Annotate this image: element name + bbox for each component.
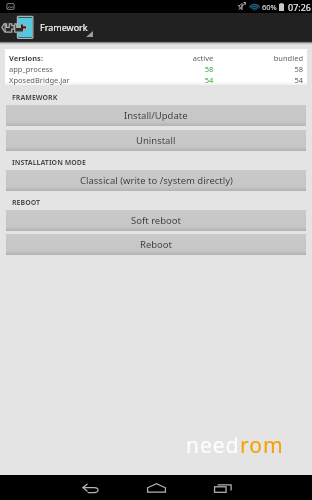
- button[interactable]: Install/Update: [6, 105, 306, 126]
- button[interactable]: Recent apps: [207, 475, 239, 500]
- staticText: app_process: [9, 64, 53, 74]
- button[interactable]: Classical (write to /system directly): [6, 170, 306, 191]
- staticText: bundled: [251, 53, 303, 63]
- staticText: FRAMEWORK: [12, 93, 58, 103]
- button[interactable]: Framework: [36, 13, 312, 41]
- staticText: Install/Update: [124, 109, 188, 122]
- staticText: 07:26: [288, 1, 312, 13]
- button[interactable]: Soft reboot: [6, 210, 306, 231]
- button[interactable]: Home: [140, 475, 172, 500]
- staticText: need: [186, 431, 240, 460]
- staticText: REBOOT: [12, 198, 41, 208]
- staticText: active: [161, 53, 245, 63]
- button[interactable]: Back: [74, 475, 106, 500]
- button[interactable]: Uninstall: [6, 130, 306, 151]
- staticText: XposedBridge.jar: [9, 75, 70, 85]
- button[interactable]: Reboot: [6, 234, 306, 255]
- staticText: Soft reboot: [131, 214, 181, 227]
- staticText: Framework: [40, 21, 88, 33]
- staticText: 60%: [262, 2, 277, 12]
- staticText: Reboot: [140, 238, 173, 251]
- staticText: Versions:: [9, 53, 43, 63]
- staticText: 58: [251, 64, 303, 74]
- staticText: rom: [240, 431, 284, 460]
- staticText: 54: [167, 75, 251, 85]
- staticText: Uninstall: [136, 134, 176, 147]
- staticText: INSTALLATION MODE: [12, 158, 86, 168]
- staticText: 54: [251, 75, 303, 85]
- staticText: 58: [167, 64, 251, 74]
- staticText: Classical (write to /system directly): [80, 174, 233, 187]
